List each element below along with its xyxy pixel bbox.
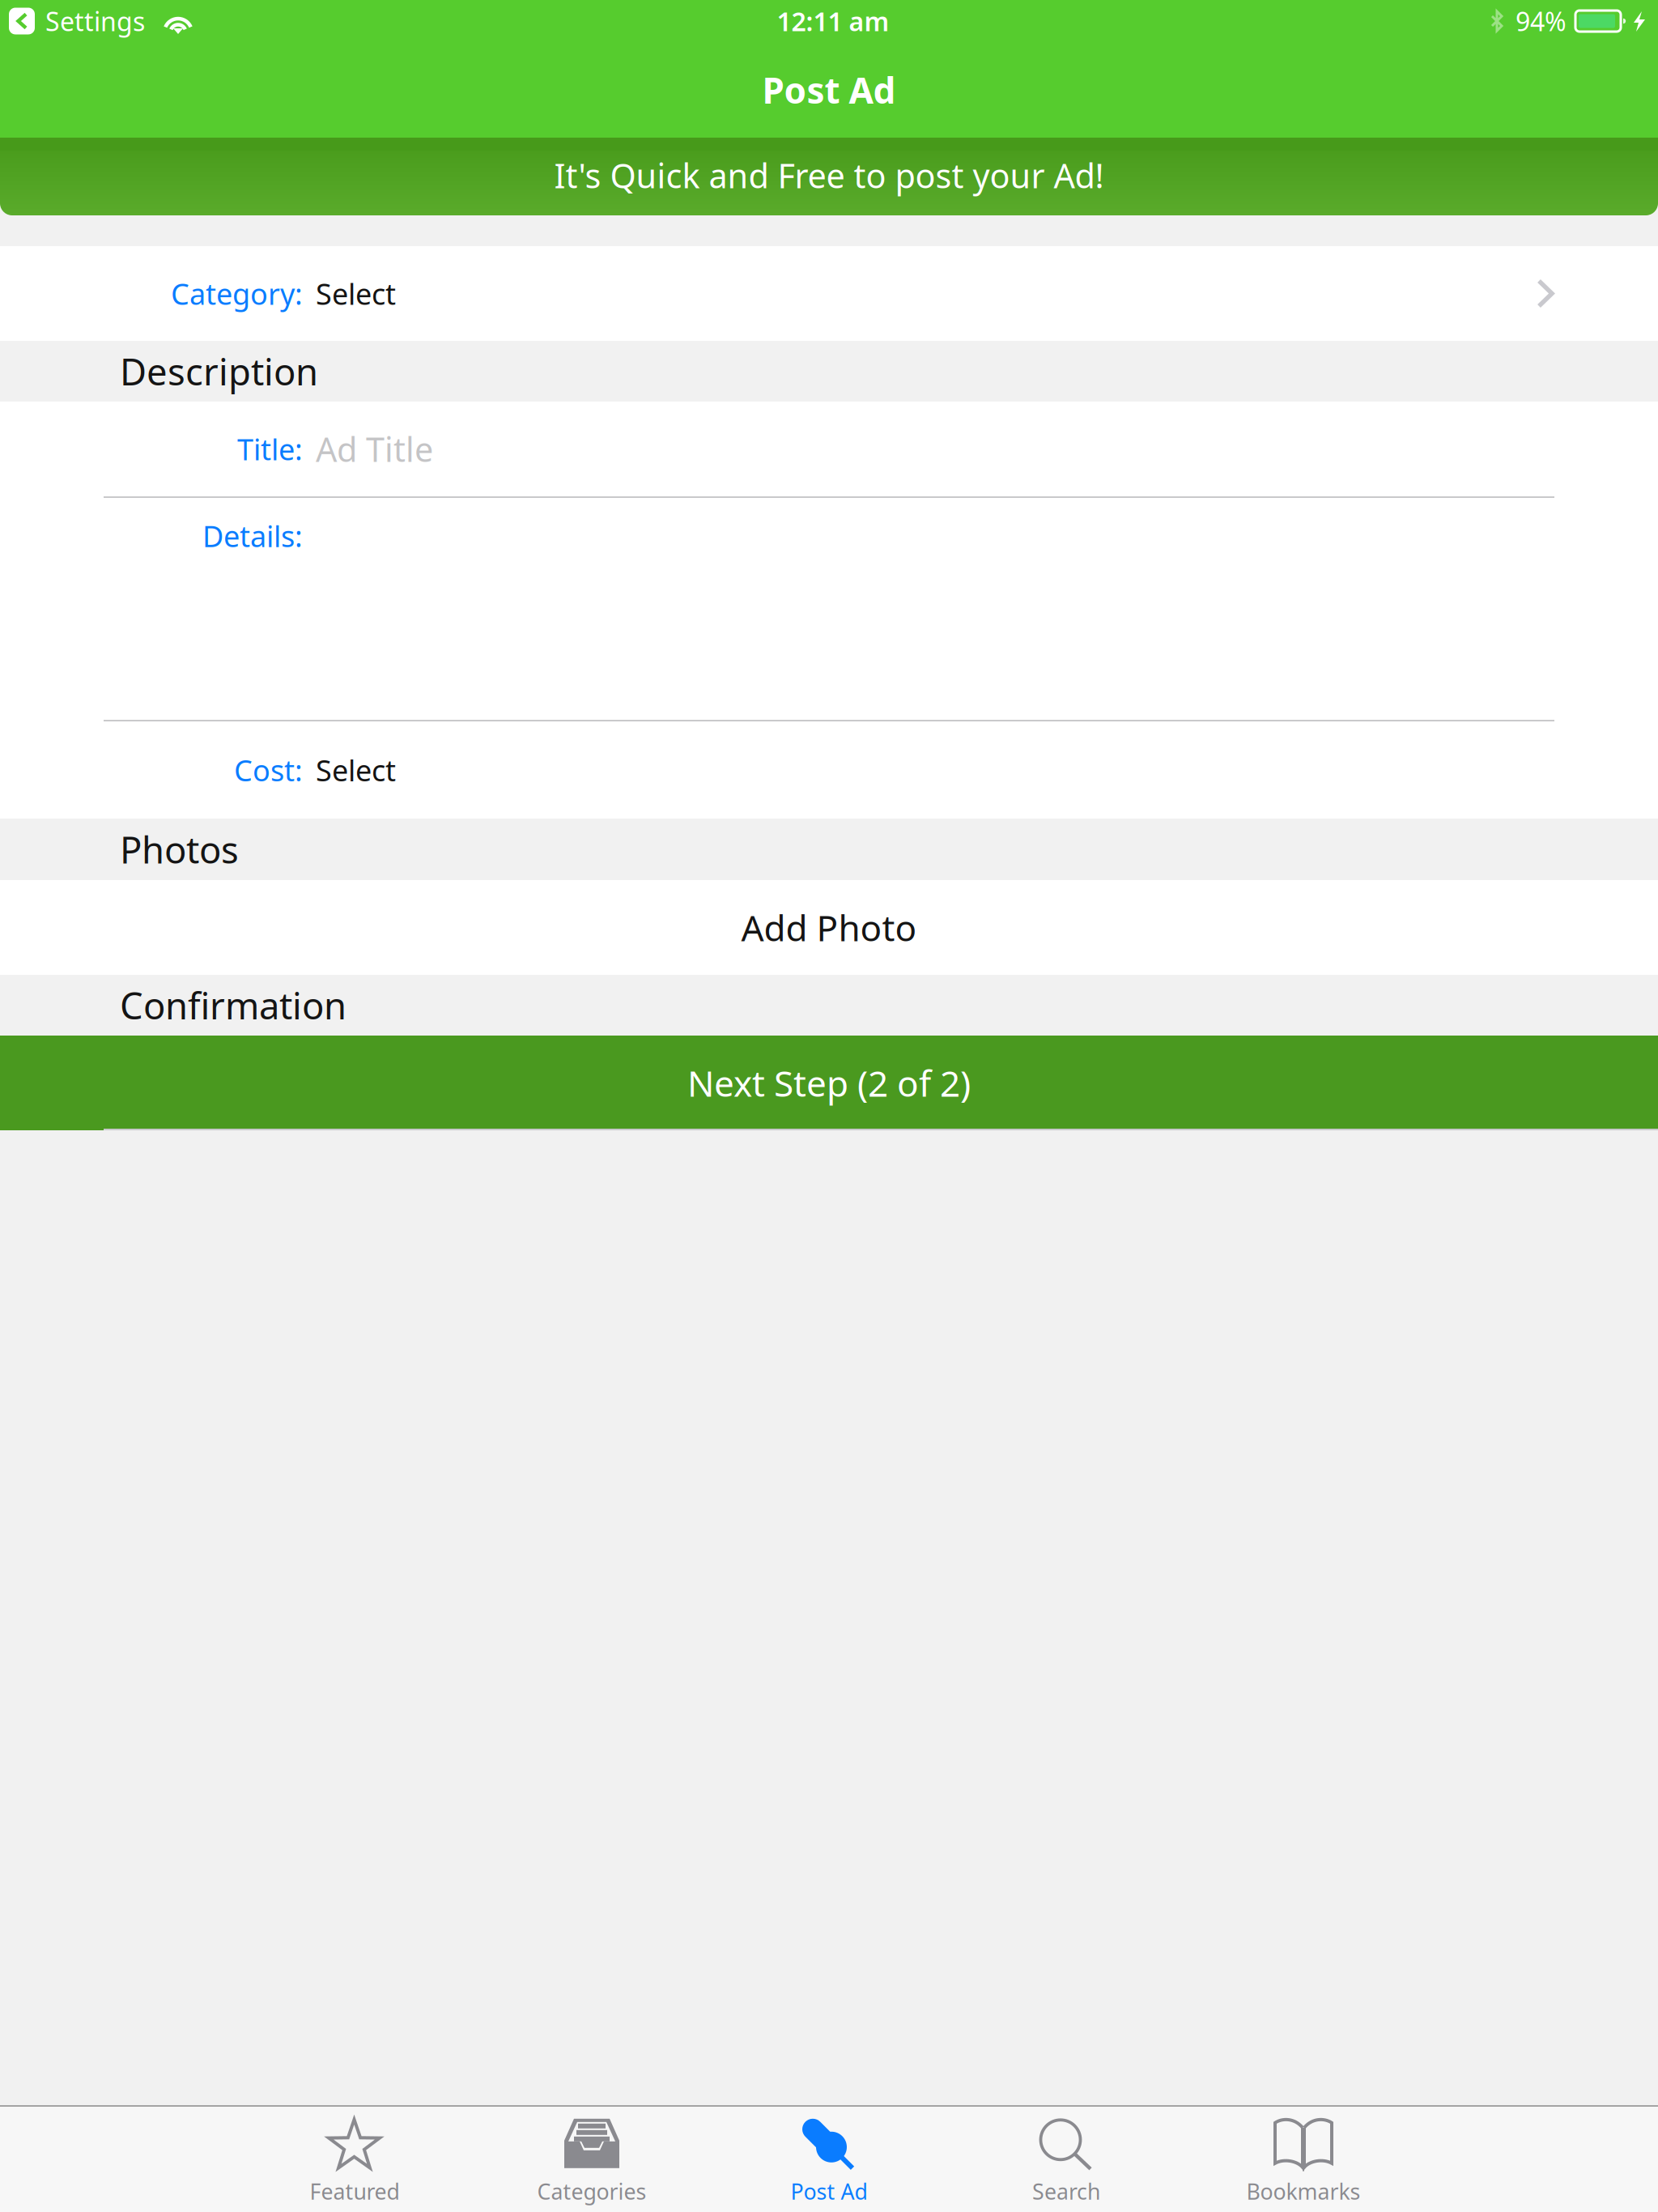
button[interactable]: Settings (9, 4, 145, 38)
button[interactable]: Bookmarks (1185, 2107, 1422, 2212)
button[interactable]: Add Photo (0, 880, 1658, 975)
staticText: 12:11 am (777, 4, 889, 38)
button[interactable]: Categories (473, 2107, 710, 2212)
button[interactable]: Next Step (2 of 2) (0, 1036, 1658, 1130)
staticText: It's Quick and Free to post your Ad! (554, 153, 1104, 197)
staticText: Post Ad (791, 2177, 867, 2206)
button[interactable]: Cost: (0, 721, 1658, 819)
staticText: Category: (171, 274, 303, 313)
button[interactable]: Search (948, 2107, 1185, 2212)
staticText: Title: (237, 430, 303, 468)
staticText: Select (316, 751, 396, 789)
staticText: Description (120, 347, 318, 396)
button[interactable]: Featured (236, 2107, 473, 2212)
staticText: Details: (202, 517, 303, 555)
button[interactable]: Category: (0, 246, 1658, 341)
button[interactable]: Post Ad (710, 2107, 948, 2212)
staticText: Search (1032, 2177, 1100, 2206)
staticText: Next Step (2 of 2) (687, 1059, 971, 1107)
staticText: Confirmation (120, 981, 346, 1030)
staticText: 94% (1516, 4, 1567, 38)
staticText: Featured (310, 2177, 400, 2206)
staticText: Cost: (234, 751, 303, 789)
staticText: Ad Title (316, 427, 433, 471)
staticText: Post Ad (762, 66, 896, 114)
staticText: Settings (45, 4, 145, 38)
staticText: Add Photo (741, 904, 917, 951)
staticText: Photos (120, 825, 239, 874)
staticText: Bookmarks (1246, 2177, 1360, 2206)
staticText: Select (316, 274, 396, 313)
staticText: Categories (537, 2177, 646, 2206)
